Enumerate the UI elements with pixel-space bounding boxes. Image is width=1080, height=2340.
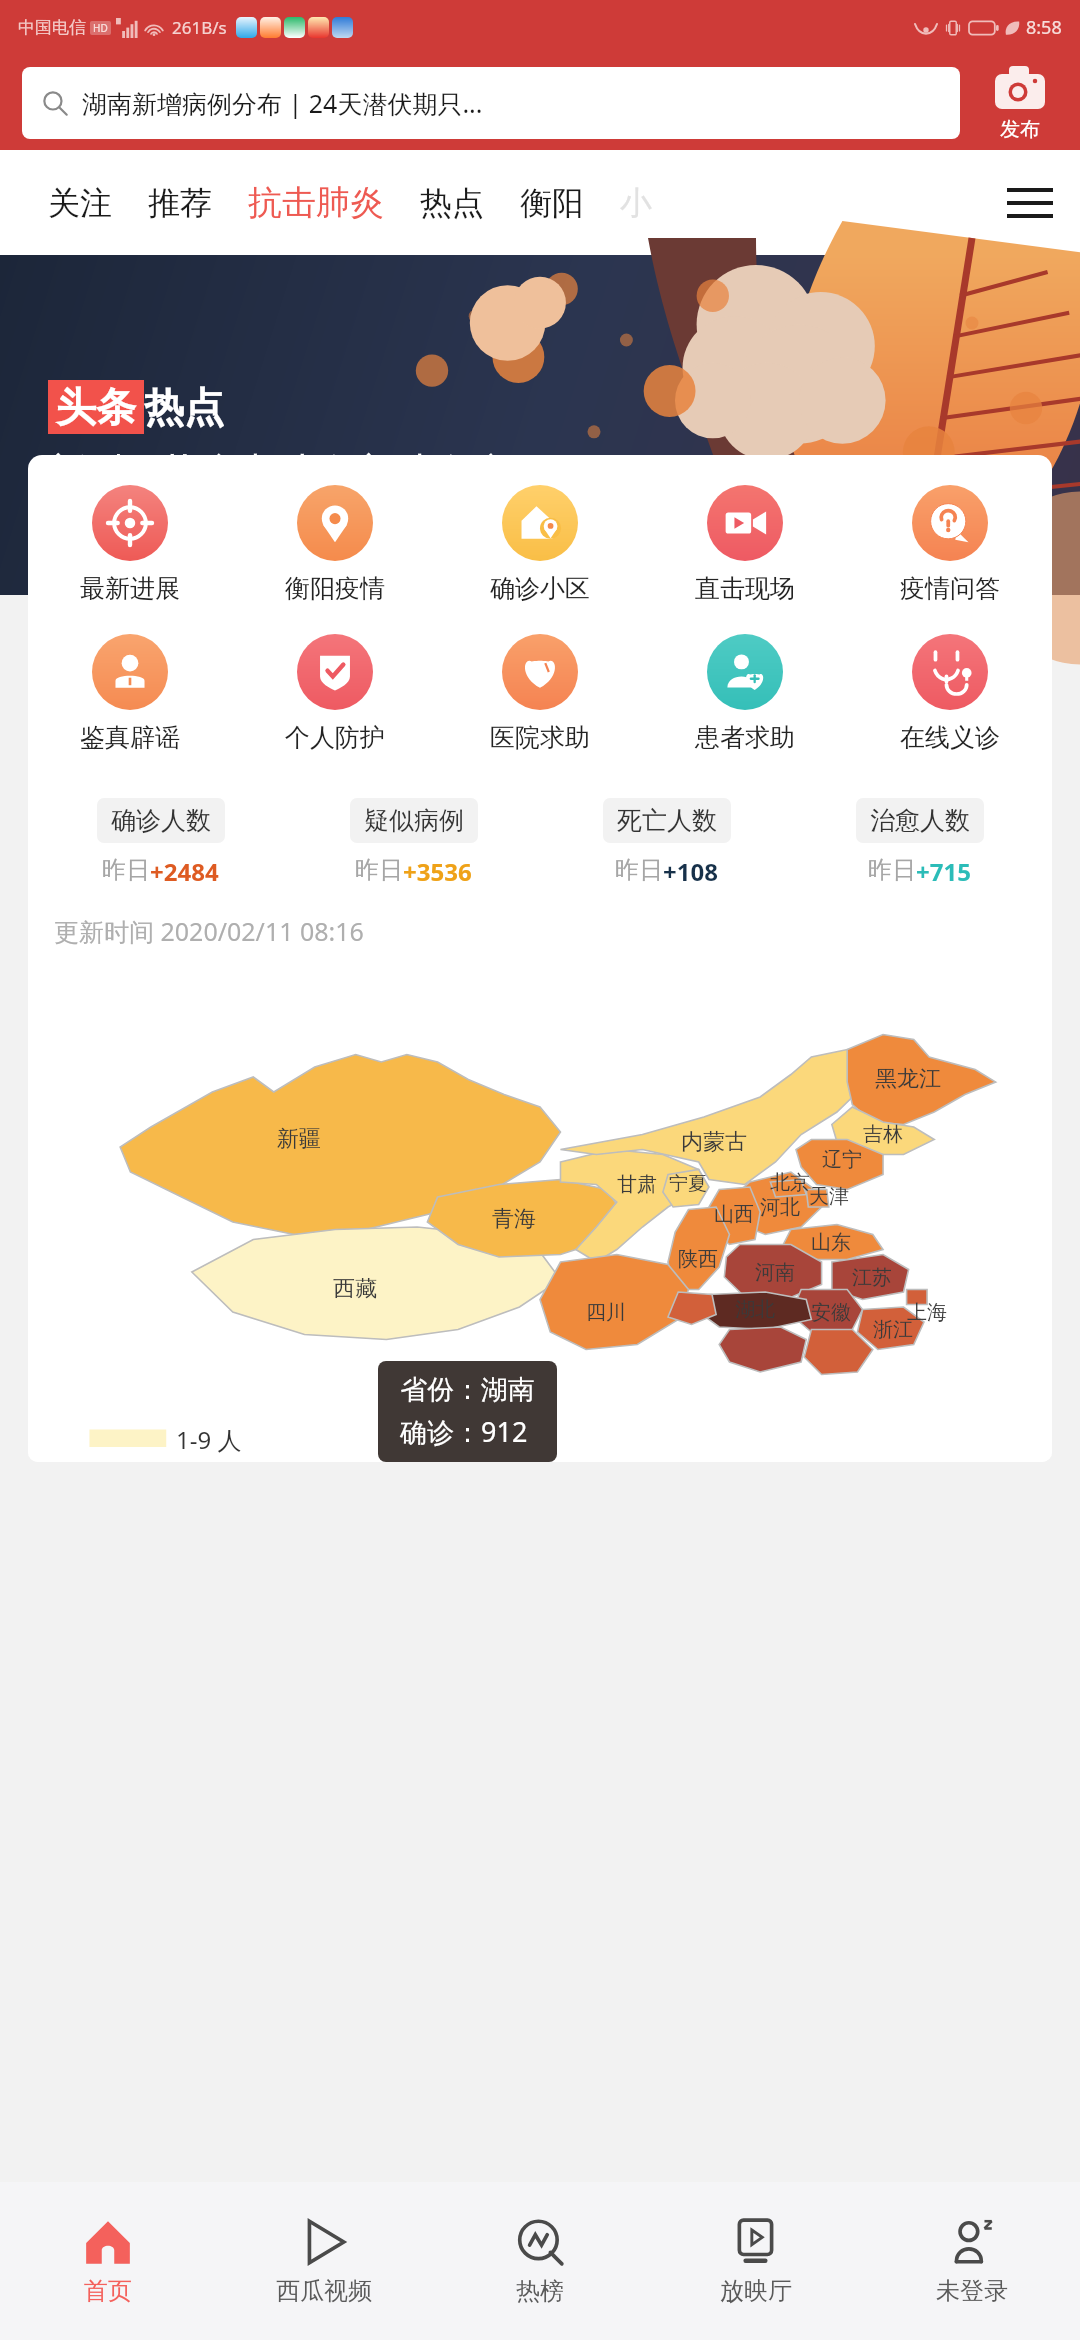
staticText: 42708 xyxy=(92,723,230,788)
staticText: 发布 xyxy=(1000,117,1040,142)
staticText: HD xyxy=(93,21,108,35)
staticText: 直击现场 xyxy=(695,573,795,604)
staticText: 新型冠状病毒肺炎实时追踪 xyxy=(48,448,504,496)
staticText: 治愈人数 xyxy=(870,805,970,836)
staticText: 青海 xyxy=(492,1205,536,1233)
staticText: 中国电信 xyxy=(18,17,86,38)
staticText: 关注 xyxy=(48,183,112,223)
button[interactable]: 衡阳 xyxy=(502,150,602,255)
staticText: 头条 xyxy=(56,382,136,432)
staticText: 山西 xyxy=(714,1202,754,1227)
staticText: 四川 xyxy=(586,1300,626,1325)
staticText: 热点 xyxy=(420,183,484,223)
staticText: 在线义诊 xyxy=(900,722,1000,753)
staticText: 个人防护 xyxy=(285,722,385,753)
staticText: 安徽 xyxy=(811,1300,851,1325)
button[interactable]: 抗击肺炎 xyxy=(230,150,402,255)
staticText: 鉴真辟谣 xyxy=(80,722,180,753)
staticText: 内蒙古 xyxy=(681,1128,747,1156)
button[interactable]: 医院求助 xyxy=(437,630,642,757)
staticText: +715 xyxy=(916,855,971,888)
staticText: 衡阳疫情 xyxy=(285,573,385,604)
staticText: 放映厅 xyxy=(720,2276,792,2306)
staticText: 昨日 xyxy=(868,855,916,885)
staticText: 山东 xyxy=(811,1230,851,1255)
staticText: 江苏 xyxy=(852,1265,892,1290)
button[interactable]: 全国疫情信息 xyxy=(28,609,540,701)
staticText: 省份：湖南 xyxy=(400,1373,535,1407)
staticText: 最新进展 xyxy=(80,573,180,604)
button[interactable]: 衡阳疫情 xyxy=(232,481,437,608)
staticText: 河北 xyxy=(760,1195,800,1220)
button[interactable]: 推荐 xyxy=(130,150,230,255)
staticText: +3536 xyxy=(403,855,472,888)
button[interactable]: 放映厅 xyxy=(648,2182,864,2340)
button[interactable]: 最新进展 xyxy=(28,481,232,608)
staticText: 西藏 xyxy=(333,1275,377,1303)
staticText: 衡阳 xyxy=(520,183,584,223)
staticText: 未登录 xyxy=(936,2276,1008,2306)
staticText: 辽宁 xyxy=(822,1147,862,1172)
button[interactable]: 关注 xyxy=(30,150,130,255)
staticText: +108 xyxy=(663,855,718,888)
button[interactable]: 西瓜视频 xyxy=(216,2182,432,2340)
staticText: 患者求助 xyxy=(695,722,795,753)
staticText: 1-9 人 xyxy=(176,1423,242,1456)
button[interactable]: 发布 xyxy=(974,63,1066,142)
staticText: 261B/s xyxy=(172,16,227,39)
staticText: 吉林 xyxy=(863,1122,903,1147)
staticText: 8:58 xyxy=(1026,15,1062,40)
staticText: 医院求助 xyxy=(490,722,590,753)
staticText: 确诊：912 xyxy=(400,1413,528,1450)
staticText: 上海 xyxy=(907,1300,947,1325)
staticText: 河南 xyxy=(755,1260,795,1285)
staticText: 抗击肺炎 xyxy=(248,181,384,224)
staticText: 湖北 xyxy=(735,1297,775,1322)
button[interactable]: 个人防护 xyxy=(232,630,437,757)
staticText: 确诊人数 xyxy=(111,805,211,836)
staticText: 新疆 xyxy=(277,1125,321,1153)
staticText: 首页 xyxy=(84,2276,132,2306)
staticText: 热点 xyxy=(144,382,224,432)
button[interactable]: 头条 xyxy=(0,255,1080,595)
button[interactable]: 疫情问答 xyxy=(847,481,1052,608)
staticText: 死亡人数 xyxy=(617,805,717,836)
staticText: 黑龙江 xyxy=(875,1065,941,1093)
staticText: 疫情问答 xyxy=(900,573,1000,604)
button[interactable]: 热榜 xyxy=(432,2182,648,2340)
staticText: 浙江 xyxy=(873,1317,913,1342)
staticText: 确诊小区 xyxy=(490,573,590,604)
button[interactable]: 直击现场 xyxy=(642,481,847,608)
button[interactable]: 频道菜单 xyxy=(980,150,1080,255)
button[interactable]: 未登录 xyxy=(864,2182,1080,2340)
button[interactable]: 小 xyxy=(602,150,670,255)
staticText: 热榜 xyxy=(516,2276,564,2306)
staticText: 更新时间 2020/02/11 08:16 xyxy=(54,914,364,948)
button[interactable]: 首页 xyxy=(0,2182,216,2340)
staticText: 3998 xyxy=(865,723,975,788)
staticText: 西瓜视频 xyxy=(276,2276,372,2306)
staticText: 湖南新增病例分布 | 24天潜伏期只... xyxy=(82,86,483,120)
staticText: +2484 xyxy=(150,855,219,888)
staticText: 甘肃 xyxy=(617,1172,657,1197)
staticText: 北京 xyxy=(770,1170,810,1195)
button[interactable]: 衡阳疫情信息 xyxy=(540,609,1052,701)
staticText: 推荐 xyxy=(148,183,212,223)
button[interactable]: 鉴真辟谣 xyxy=(28,630,232,757)
staticText: 小 xyxy=(620,183,652,223)
staticText: 陕西 xyxy=(678,1247,718,1272)
button[interactable]: 湖南新增病例分布 | 24天潜伏期只... xyxy=(22,67,960,139)
staticText: 衡阳疫情信息 xyxy=(718,635,910,675)
button[interactable]: 热点 xyxy=(402,150,502,255)
staticText: 21675 xyxy=(345,723,483,788)
staticText: 昨日 xyxy=(355,855,403,885)
button[interactable]: 在线义诊 xyxy=(847,630,1052,757)
staticText: 天津 xyxy=(809,1184,849,1209)
staticText: 昨日 xyxy=(102,855,150,885)
staticText: 1017 xyxy=(612,723,722,788)
button[interactable]: 确诊小区 xyxy=(437,481,642,608)
button[interactable]: 患者求助 xyxy=(642,630,847,757)
staticText: 疑似病例 xyxy=(364,805,464,836)
staticText: 宁夏 xyxy=(669,1172,707,1196)
staticText: 昨日 xyxy=(615,855,663,885)
